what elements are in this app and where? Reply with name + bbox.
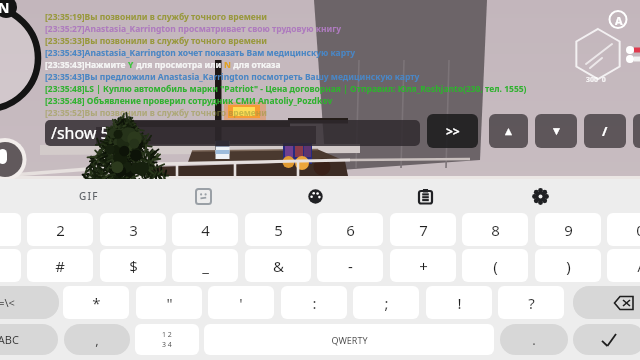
staticText: GIF bbox=[79, 189, 99, 203]
staticText: для отказа bbox=[231, 59, 281, 71]
staticText: - bbox=[348, 256, 353, 276]
button[interactable]: $ bbox=[100, 249, 166, 282]
button[interactable]: , bbox=[64, 324, 130, 355]
button[interactable]: + bbox=[390, 249, 456, 282]
staticText: ▲ bbox=[505, 126, 512, 136]
button[interactable]: 8 bbox=[462, 213, 528, 246]
staticText: [23:35:52]Вы позвонили в службу точного … bbox=[45, 107, 268, 119]
staticText: 3 bbox=[129, 220, 138, 240]
button[interactable]: ; bbox=[353, 286, 419, 319]
button[interactable]: sticker bbox=[181, 179, 225, 213]
button[interactable]: : bbox=[281, 286, 347, 319]
staticText: 0 bbox=[636, 220, 640, 240]
staticText: 4 bbox=[201, 220, 210, 240]
button[interactable]: ) bbox=[535, 249, 601, 282]
staticText: 6 bbox=[346, 220, 355, 240]
button[interactable]: 0 bbox=[607, 213, 640, 246]
button[interactable]: =\< bbox=[0, 286, 59, 319]
button[interactable]: & bbox=[245, 249, 311, 282]
button[interactable]: gif bbox=[67, 179, 111, 213]
button[interactable]: ! bbox=[426, 286, 492, 319]
staticText: N bbox=[0, 0, 10, 17]
staticText: ? bbox=[528, 293, 535, 313]
staticText: ) bbox=[566, 256, 571, 276]
staticText: / bbox=[637, 256, 640, 276]
button[interactable]: palette bbox=[293, 179, 337, 213]
button[interactable]: / bbox=[607, 249, 640, 282]
staticText: [23:35:48] Объявление проверил сотрудник… bbox=[45, 95, 333, 107]
button[interactable]: ▼ bbox=[535, 114, 577, 148]
staticText: $ bbox=[129, 256, 138, 276]
button[interactable]: QWERTY bbox=[204, 324, 494, 355]
button[interactable]: 7 bbox=[390, 213, 456, 246]
staticText: 1 2 bbox=[162, 330, 172, 340]
staticText: " bbox=[166, 293, 173, 313]
staticText: Y bbox=[128, 59, 134, 71]
staticText: [23:35:43]Вы предложили Anastasia_Karrin… bbox=[45, 71, 420, 83]
button[interactable]: ▲ bbox=[489, 114, 528, 148]
staticText: [23:35:19]Вы позвонили в службу точного … bbox=[45, 11, 268, 23]
staticText: & bbox=[273, 256, 284, 276]
staticText: =\< bbox=[0, 295, 15, 310]
button[interactable]: - bbox=[317, 249, 383, 282]
staticText: ! bbox=[457, 293, 462, 313]
staticText: ' bbox=[239, 293, 243, 313]
staticText: 2 bbox=[56, 220, 65, 240]
button[interactable]: # bbox=[27, 249, 93, 282]
staticText: + bbox=[419, 256, 428, 276]
button[interactable]: ( bbox=[462, 249, 528, 282]
button[interactable]: 1 2 bbox=[135, 324, 199, 355]
staticText: [23:35:43]Нажмите bbox=[45, 59, 128, 71]
button[interactable]: /show 52. bbox=[45, 120, 420, 146]
staticText: N bbox=[224, 59, 231, 71]
button[interactable]: enter bbox=[573, 324, 640, 355]
button[interactable]: * bbox=[63, 286, 129, 319]
button[interactable]: ?ABC bbox=[0, 324, 58, 355]
staticText: # bbox=[55, 256, 65, 276]
button[interactable]: key bbox=[633, 114, 640, 148]
button[interactable]: >> bbox=[427, 114, 478, 148]
staticText: [23:35:27]Anastasia_Karrington просматри… bbox=[45, 23, 342, 35]
staticText: 300 0 bbox=[586, 75, 606, 85]
staticText: _ bbox=[202, 256, 209, 276]
button[interactable]: . bbox=[500, 324, 568, 355]
button[interactable]: 6 bbox=[317, 213, 383, 246]
staticText: 8 bbox=[491, 220, 500, 240]
staticText: >> bbox=[446, 123, 460, 139]
staticText: : bbox=[312, 293, 317, 313]
button[interactable]: backspace bbox=[573, 286, 640, 319]
button[interactable]: 5 bbox=[245, 213, 311, 246]
staticText: / bbox=[602, 122, 608, 140]
staticText: 5 bbox=[274, 220, 283, 240]
staticText: [23:35:43]Anastasia_Karrington хочет пок… bbox=[45, 47, 356, 59]
staticText: ▼ bbox=[553, 126, 560, 136]
staticText: [23:35:33]Вы позвонили в службу точного … bbox=[45, 35, 268, 47]
button[interactable]: " bbox=[136, 286, 202, 319]
button[interactable]: ? bbox=[498, 286, 564, 319]
staticText: * bbox=[92, 293, 101, 313]
button[interactable]: 4 bbox=[172, 213, 238, 246]
staticText: ; bbox=[384, 293, 389, 313]
staticText: ?ABC bbox=[0, 332, 19, 347]
button[interactable]: _ bbox=[172, 249, 238, 282]
staticText: QWERTY bbox=[331, 334, 368, 346]
staticText: . bbox=[532, 331, 536, 349]
staticText: ( bbox=[493, 256, 498, 276]
staticText: [23:35:48]LS | Куплю автомобиль марки "P… bbox=[45, 83, 527, 95]
button[interactable]: clipboard bbox=[403, 179, 447, 213]
staticText: , bbox=[95, 331, 99, 349]
button[interactable]: ' bbox=[208, 286, 274, 319]
staticText: /show 52. bbox=[51, 122, 124, 144]
button[interactable]: settings bbox=[518, 179, 562, 213]
staticText: для просмотра или bbox=[134, 59, 224, 71]
button[interactable]: 2 bbox=[27, 213, 93, 246]
button[interactable]: 3 bbox=[100, 213, 166, 246]
staticText: 3 4 bbox=[162, 340, 172, 350]
button[interactable]: 9 bbox=[535, 213, 601, 246]
button[interactable]: / bbox=[584, 114, 626, 148]
staticText: 7 bbox=[419, 220, 428, 240]
staticText: A bbox=[615, 13, 623, 28]
staticText: 9 bbox=[564, 220, 573, 240]
